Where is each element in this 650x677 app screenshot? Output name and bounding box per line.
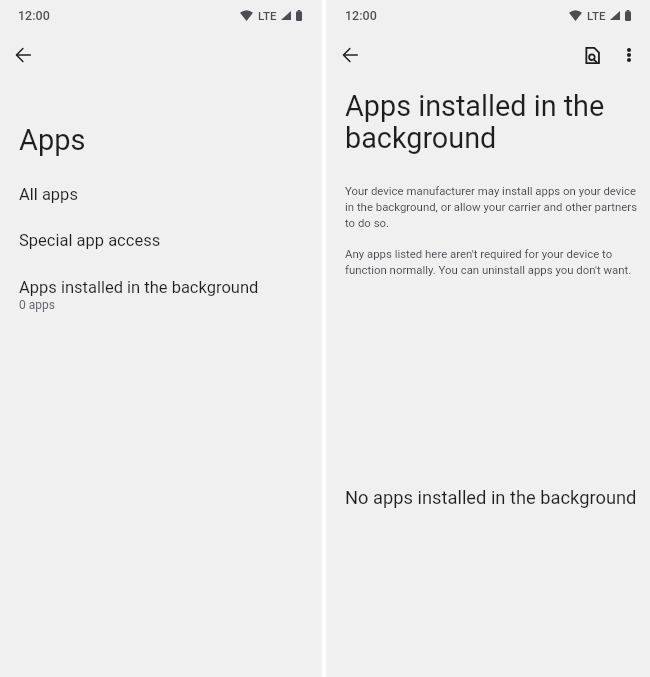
staticText: 0 apps <box>19 298 55 312</box>
button[interactable]: Navigate up <box>334 39 366 71</box>
button[interactable]: Search in page <box>576 39 608 71</box>
button[interactable]: Special app access <box>0 217 321 257</box>
staticText: LTE <box>587 9 606 22</box>
button[interactable]: Apps installed in the background <box>0 264 321 319</box>
staticText: 12:00 <box>345 8 377 23</box>
staticText: Apps installed in the background <box>345 91 635 155</box>
staticText: All apps <box>19 185 78 204</box>
button[interactable]: All apps <box>0 171 321 211</box>
staticText: No apps installed in the background <box>345 487 637 508</box>
staticText: Apps installed in the background <box>19 278 259 297</box>
staticText: Special app access <box>19 231 161 250</box>
button[interactable]: More options <box>613 39 645 71</box>
staticText: Your device manufacturer may install app… <box>345 182 645 230</box>
staticText: Any apps listed here aren't required for… <box>345 245 645 277</box>
staticText: LTE <box>258 9 277 22</box>
staticText: 12:00 <box>18 8 50 23</box>
staticText: Apps <box>19 123 86 157</box>
button[interactable]: Navigate up <box>7 39 39 71</box>
